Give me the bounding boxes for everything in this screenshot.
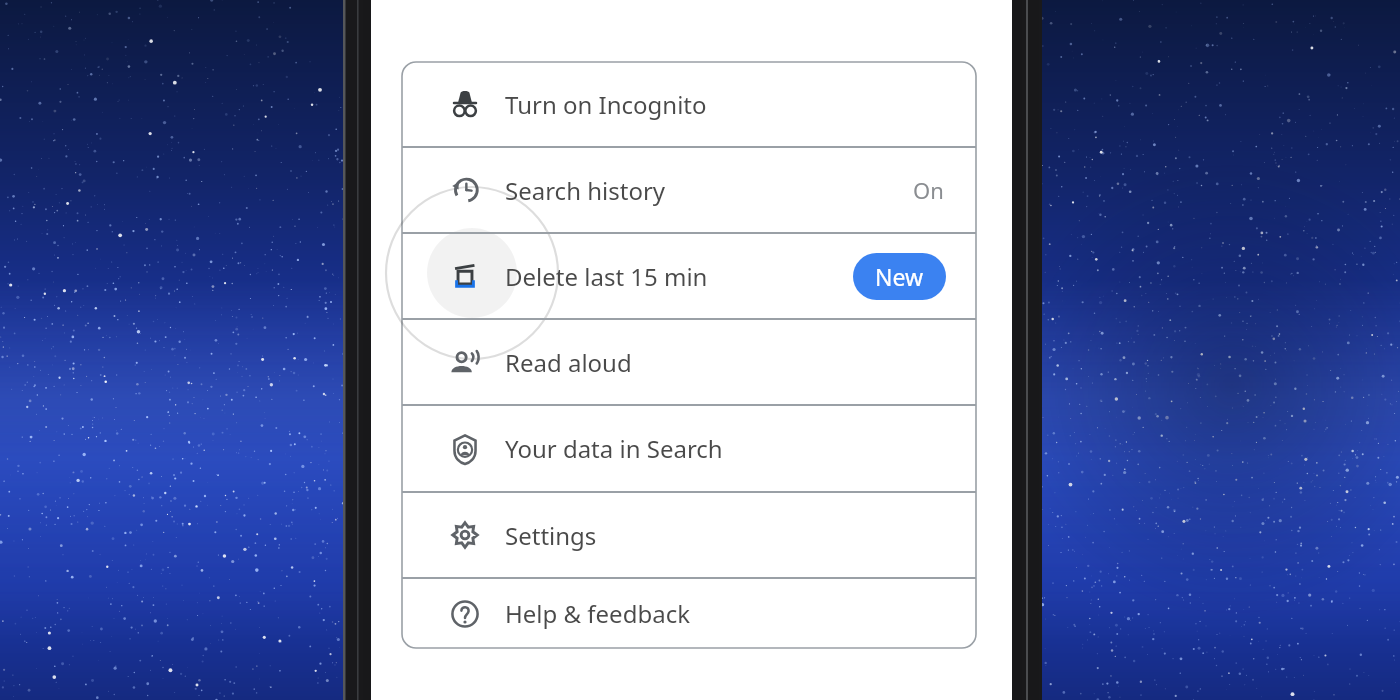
other: Incognito xyxy=(448,87,482,121)
other: Read aloud xyxy=(448,345,482,379)
staticText: On xyxy=(913,175,944,205)
button[interactable]: Delete last 15 minutes xyxy=(402,234,976,318)
staticText: Search history xyxy=(505,174,666,207)
staticText: Your data in Search xyxy=(505,432,723,465)
staticText: Settings xyxy=(505,519,597,552)
other: Your data in Search xyxy=(448,432,482,466)
other: Delete last 15 minutes xyxy=(448,259,482,293)
button[interactable]: Read aloud xyxy=(402,320,976,404)
staticText: New xyxy=(875,261,924,292)
button[interactable]: Search history xyxy=(402,148,976,232)
button[interactable]: New xyxy=(853,253,946,300)
button[interactable]: Help and feedback xyxy=(402,579,976,648)
button[interactable]: Your data in Search xyxy=(402,406,976,491)
staticText: Delete last 15 min xyxy=(505,260,708,293)
button[interactable]: Incognito xyxy=(402,62,976,146)
other: Search history xyxy=(448,173,482,207)
other: Settings xyxy=(448,518,482,552)
staticText: Help & feedback xyxy=(505,597,690,630)
button[interactable]: Settings xyxy=(402,493,976,577)
staticText: Read aloud xyxy=(505,346,632,379)
other: Help and feedback xyxy=(448,597,482,631)
staticText: Turn on Incognito xyxy=(505,88,707,121)
